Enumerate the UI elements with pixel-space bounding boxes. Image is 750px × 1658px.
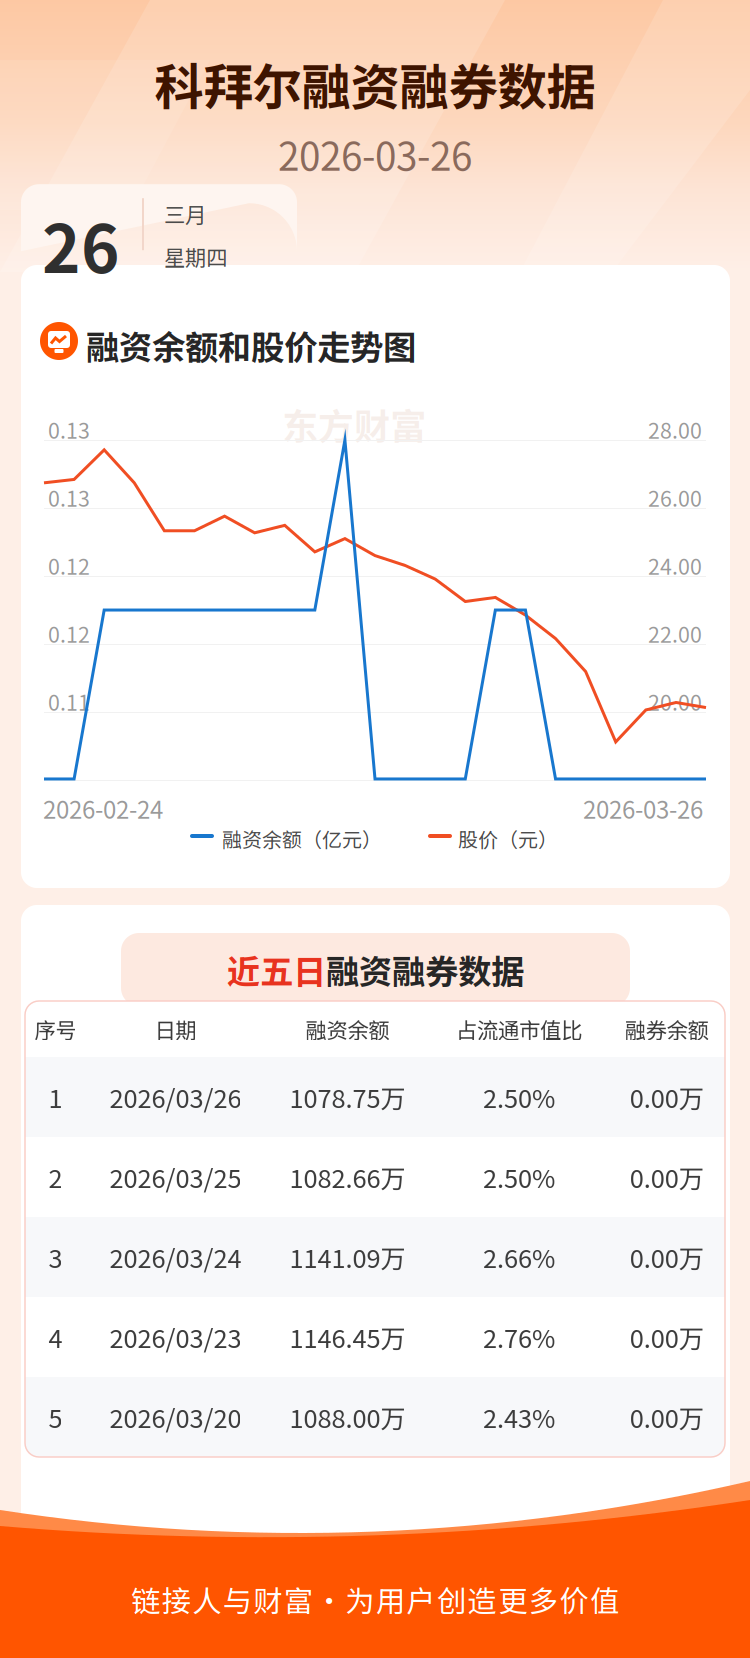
staticText: 东方财富	[282, 398, 426, 450]
staticText: 2.76%	[483, 1319, 555, 1355]
staticText: 20.00	[648, 686, 702, 717]
staticText: 1141.09万	[289, 1239, 405, 1275]
staticText: 24.00	[648, 550, 702, 581]
staticText: 26.00	[648, 482, 702, 513]
staticText: 0.00万	[630, 1319, 704, 1355]
staticText: 0.11	[48, 686, 90, 717]
staticText: 0.13	[48, 482, 90, 513]
staticText: 2.50%	[483, 1079, 555, 1115]
staticText: 0.00万	[630, 1079, 704, 1115]
staticText: 2026/03/25	[109, 1159, 241, 1195]
staticText: 0.00万	[630, 1399, 704, 1435]
staticText: 近五日	[227, 945, 326, 994]
staticText: 三月	[164, 198, 206, 229]
staticText: 股价（元）	[458, 824, 558, 853]
staticText: 1078.75万	[289, 1079, 405, 1115]
staticText: 融券余额	[625, 1014, 709, 1044]
staticText: 4	[48, 1319, 62, 1355]
staticText: 2026/03/26	[109, 1079, 241, 1115]
staticText: 2026/03/24	[109, 1239, 241, 1275]
staticText: 1	[48, 1079, 62, 1115]
staticText: 2	[48, 1159, 62, 1195]
staticText: 2.66%	[483, 1239, 555, 1275]
staticText: 2026/03/20	[109, 1399, 241, 1435]
staticText: 3	[48, 1239, 62, 1275]
staticText: 2026-03-26	[278, 126, 472, 182]
staticText: 融资余额	[305, 1014, 389, 1044]
staticText: 0.00万	[630, 1239, 704, 1275]
staticText: 0.13	[48, 414, 90, 445]
staticText: 融资融券数据	[326, 945, 524, 994]
staticText: 0.12	[48, 550, 90, 581]
staticText: 22.00	[648, 618, 702, 649]
staticText: 2026-03-26	[583, 791, 703, 826]
staticText: 1146.45万	[289, 1319, 405, 1355]
staticText: 融资余额（亿元）	[222, 824, 382, 853]
staticText: 2.50%	[483, 1159, 555, 1195]
staticText: 融资余额和股价走势图	[86, 321, 416, 369]
staticText: 占流通市值比	[456, 1014, 582, 1044]
staticText: 28.00	[648, 414, 702, 445]
staticText: 0.00万	[630, 1159, 704, 1195]
staticText: 1088.00万	[289, 1399, 405, 1435]
staticText: 1082.66万	[289, 1159, 405, 1195]
staticText: 链接人与财富·为用户创造更多价值	[131, 1578, 619, 1620]
staticText: 日期	[154, 1014, 196, 1044]
staticText: 5	[48, 1399, 62, 1435]
staticText: 0.12	[48, 618, 90, 649]
staticText: 科拜尔融资融券数据	[154, 48, 595, 119]
staticText: 2026/03/23	[109, 1319, 241, 1355]
staticText: 26	[42, 197, 120, 292]
staticText: 2.43%	[483, 1399, 555, 1435]
staticText: 星期四	[164, 241, 227, 272]
staticText: 2026-02-24	[43, 791, 163, 826]
staticText: 序号	[34, 1014, 76, 1044]
